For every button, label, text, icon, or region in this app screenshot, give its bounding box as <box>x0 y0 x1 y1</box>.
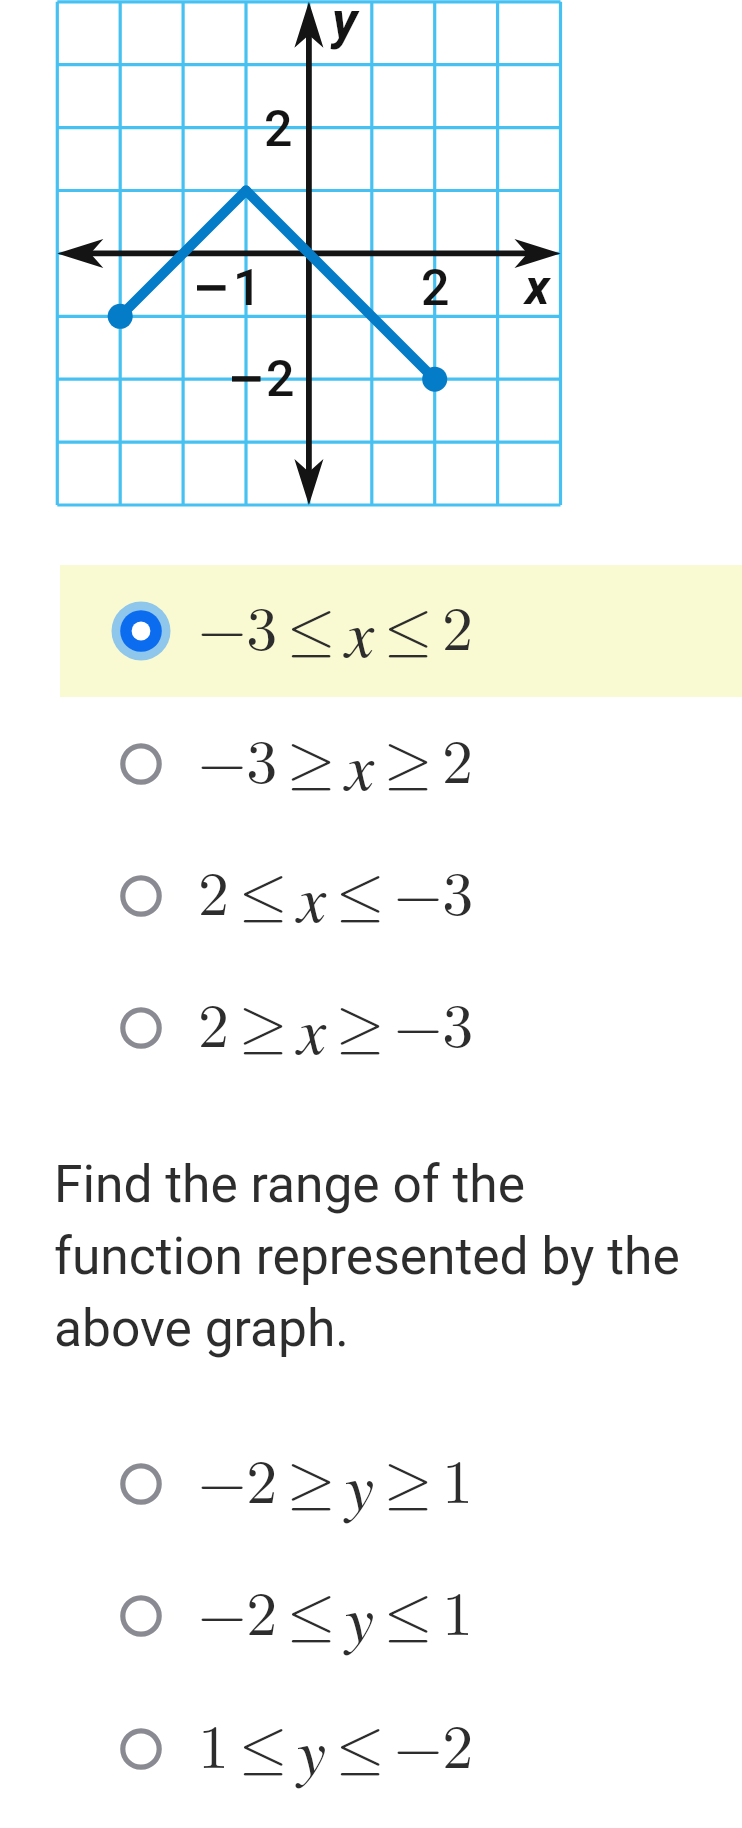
staticText: ≥ <box>336 997 385 1059</box>
staticText: 2 <box>442 600 474 662</box>
staticText: ≤ <box>287 600 336 662</box>
staticText: 2 <box>198 865 230 927</box>
staticText: 1 <box>442 1585 474 1647</box>
staticText: ≥ <box>384 733 433 795</box>
staticText: 2 <box>264 100 293 159</box>
staticText: y <box>297 1705 327 1793</box>
button[interactable]: 2 greater than or equal x greater than o… <box>60 962 742 1094</box>
staticText: x <box>525 258 550 317</box>
button[interactable]: minus 2 less than or equal y less than o… <box>60 1550 742 1682</box>
staticText: x <box>345 720 375 808</box>
staticText: y <box>345 1572 375 1660</box>
staticText: 1 <box>233 259 262 318</box>
staticText: x <box>345 587 375 675</box>
staticText: y <box>345 1440 375 1528</box>
staticText: 1 <box>198 1718 230 1780</box>
staticText: 2 <box>421 259 450 318</box>
button[interactable]: 1 less than or equal y less than or equa… <box>60 1683 742 1815</box>
staticText: x <box>297 852 327 940</box>
staticText: 2 <box>266 350 295 409</box>
button[interactable]: minus 3 less than or equal x less than o… <box>60 565 742 697</box>
staticText: ≥ <box>287 1453 336 1515</box>
staticText: 2 <box>198 997 230 1059</box>
staticText: y <box>332 0 358 51</box>
staticText: −3 <box>198 600 278 662</box>
staticText: −3 <box>394 997 474 1059</box>
staticText: ≤ <box>384 600 433 662</box>
staticText: ≤ <box>287 1585 336 1647</box>
staticText: x <box>297 984 327 1072</box>
staticText: −2 <box>394 1718 474 1780</box>
staticText: ≤ <box>336 1718 385 1780</box>
staticText: ≤ <box>239 865 288 927</box>
staticText: ≤ <box>384 1585 433 1647</box>
button[interactable]: 2 less than or equal x less than or equa… <box>60 830 742 962</box>
staticText: ≥ <box>239 997 288 1059</box>
button[interactable]: minus 3 greater than or equal x greater … <box>60 698 742 830</box>
staticText: 2 <box>442 733 474 795</box>
staticText: ≥ <box>384 1453 433 1515</box>
staticText: ≤ <box>239 1718 288 1780</box>
staticText: −3 <box>394 865 474 927</box>
button[interactable]: minus 2 greater than or equal y greater … <box>60 1418 742 1550</box>
staticText: Find the range of the function represent… <box>54 1154 699 1358</box>
staticText: ≥ <box>287 733 336 795</box>
staticText: −3 <box>198 733 278 795</box>
staticText: 1 <box>442 1453 474 1515</box>
staticText: ≤ <box>336 865 385 927</box>
staticText: −2 <box>198 1585 278 1647</box>
staticText: −2 <box>198 1453 278 1515</box>
